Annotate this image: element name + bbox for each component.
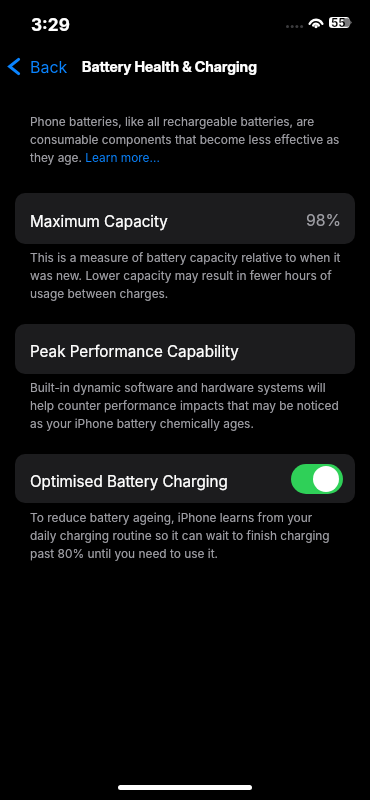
staticText: Maximum Capacity [30, 212, 168, 230]
staticText: Optimised Battery Charging [30, 472, 228, 490]
staticText: 3:29 [31, 14, 70, 35]
button[interactable]: Maximum Capacity [15, 193, 355, 244]
staticText: Phone batteries, like all rechargeable b… [30, 111, 341, 165]
staticText: Peak Performance Capability [30, 342, 239, 360]
staticText: Built-in dynamic software and hardware s… [30, 377, 341, 431]
button[interactable]: Back [0, 44, 74, 88]
staticText: 98% [306, 211, 342, 230]
button[interactable]: Peak Performance Capability [15, 324, 355, 374]
staticText: 55 [331, 16, 346, 30]
button[interactable]: Optimised Battery Charging [15, 454, 355, 503]
button[interactable]: Learn more [85, 151, 159, 166]
button[interactable]: Optimised Battery Charging toggle [291, 464, 343, 494]
staticText: This is a measure of battery capacity re… [30, 247, 341, 301]
staticText: Battery Health & Charging [82, 58, 257, 76]
staticText: Back [30, 57, 68, 76]
staticText: To reduce battery ageing, iPhone learns … [30, 507, 341, 561]
